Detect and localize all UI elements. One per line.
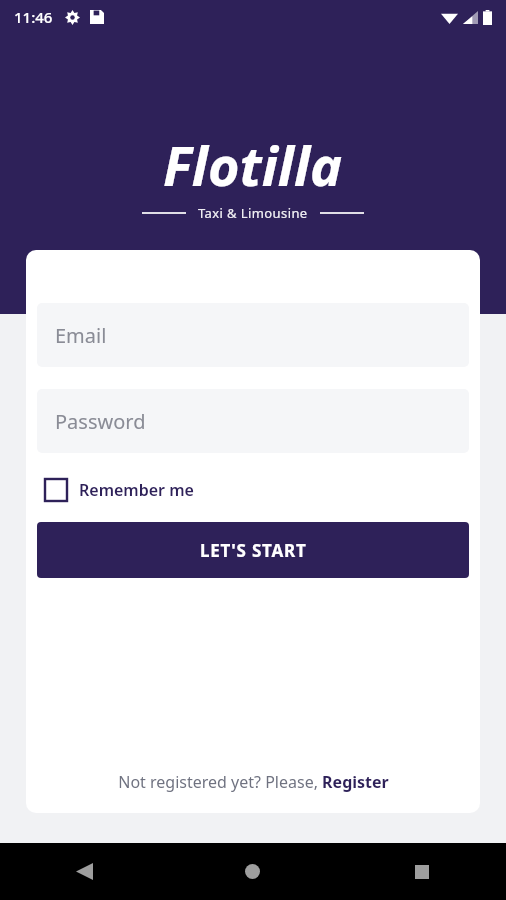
staticText: Flotilla xyxy=(163,128,343,202)
button[interactable]: LET'S START xyxy=(37,522,469,578)
staticText: Remember me xyxy=(79,479,194,501)
staticText: Taxi & Limousine xyxy=(198,204,308,222)
staticText: LET'S START xyxy=(200,539,307,562)
staticText: Email xyxy=(55,322,107,349)
button[interactable]: Home xyxy=(168,843,337,900)
button[interactable]: Back xyxy=(0,843,168,900)
staticText: Not registered yet? Please, Register xyxy=(118,771,389,793)
staticText: 11:46 xyxy=(14,7,53,27)
button[interactable]: Remember me xyxy=(37,475,194,505)
button[interactable]: Password xyxy=(37,389,469,453)
staticText: Password xyxy=(55,408,146,435)
button[interactable]: Email xyxy=(37,303,469,367)
button[interactable]: Recent apps xyxy=(337,843,506,900)
button[interactable]: Not registered yet? Please, Register xyxy=(106,765,401,799)
